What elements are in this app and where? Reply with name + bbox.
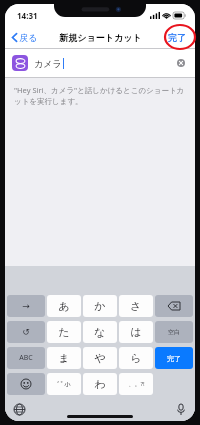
staticText: ↺ <box>22 327 30 337</box>
button[interactable]: か <box>83 295 117 317</box>
staticText: た <box>58 325 70 339</box>
staticText: ﾞﾟ小 <box>57 381 71 388</box>
button[interactable]: な <box>83 321 117 343</box>
button[interactable]: 、。?! <box>119 373 153 395</box>
button[interactable]: た <box>47 321 81 343</box>
button[interactable]: わ <box>83 373 117 395</box>
button[interactable]: や <box>83 347 117 369</box>
staticText: ら <box>130 351 142 365</box>
button[interactable]: Next candidate <box>7 295 45 317</box>
staticText: → <box>22 301 30 311</box>
button[interactable]: は <box>119 321 153 343</box>
button[interactable]: ま <box>47 347 81 369</box>
staticText: 完了 <box>168 32 186 43</box>
staticText: さ <box>130 299 142 313</box>
button[interactable]: Emoji <box>7 373 45 395</box>
button[interactable]: Delete <box>155 295 193 317</box>
staticText: 空白 <box>168 328 180 336</box>
staticText: な <box>94 325 106 339</box>
staticText: か <box>94 299 106 313</box>
button[interactable]: ABC <box>7 347 45 369</box>
button[interactable]: あ <box>47 295 81 317</box>
staticText: 新規ショートカット <box>59 32 142 43</box>
staticText: ABC <box>19 353 33 363</box>
button[interactable]: ら <box>119 347 153 369</box>
button[interactable]: Clear text <box>174 56 188 70</box>
staticText: 14:31 <box>17 10 38 21</box>
staticText: わ <box>94 377 106 391</box>
button[interactable]: カメラ <box>5 49 195 77</box>
staticText: ま <box>58 351 70 365</box>
staticText: や <box>94 351 106 365</box>
staticText: カメラ <box>34 58 62 69</box>
button[interactable]: Undo <box>7 321 45 343</box>
button[interactable]: 完了 <box>155 347 193 369</box>
button[interactable]: ﾞﾟ小 <box>47 373 81 395</box>
button[interactable]: Change keyboard <box>11 401 27 417</box>
staticText: あ <box>58 299 70 313</box>
staticText: 完了 <box>167 354 181 363</box>
button[interactable]: Dictation <box>173 401 189 417</box>
staticText: "Hey Siri、カメラ"と話しかけるとこのショートカットを実行します。 <box>14 85 186 106</box>
button[interactable]: 空白 <box>155 321 193 343</box>
button[interactable]: 戻る <box>5 29 44 46</box>
button[interactable]: 完了 <box>159 29 195 46</box>
staticText: は <box>130 325 142 339</box>
staticText: 戻る <box>19 32 38 43</box>
button[interactable]: さ <box>119 295 153 317</box>
staticText: 、。?! <box>128 380 145 388</box>
